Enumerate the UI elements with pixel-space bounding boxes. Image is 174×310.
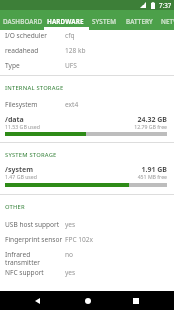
button[interactable]: HARDWARE bbox=[47, 10, 84, 30]
staticText: UFS bbox=[65, 61, 77, 70]
staticText: SYSTEM STORAGE bbox=[5, 151, 57, 159]
button[interactable]: DASHBOARD bbox=[3, 10, 43, 30]
staticText: Fingerprint sensor bbox=[5, 235, 63, 244]
staticText: FPC 102x bbox=[65, 235, 94, 244]
staticText: transmitter bbox=[5, 258, 40, 267]
button[interactable]: NETW bbox=[161, 10, 174, 30]
staticText: SYSTEM bbox=[92, 17, 117, 26]
staticText: 11.53 GB used bbox=[5, 123, 40, 130]
staticText: yes bbox=[65, 268, 76, 277]
staticText: 24.32 GB bbox=[137, 115, 167, 125]
staticText: Filesystem bbox=[5, 100, 38, 109]
staticText: 1.47 GB used bbox=[5, 173, 37, 180]
staticText: HARDWARE bbox=[47, 17, 84, 26]
staticText: BATTERY bbox=[126, 17, 153, 26]
staticText: yes bbox=[65, 220, 76, 229]
button[interactable]: Home bbox=[74, 291, 101, 310]
button[interactable]: BATTERY bbox=[126, 10, 153, 30]
button[interactable] bbox=[0, 58, 174, 73]
button[interactable]: Back bbox=[24, 291, 51, 310]
staticText: 128 kb bbox=[65, 46, 86, 55]
staticText: INTERNAL STORAGE bbox=[5, 84, 64, 92]
staticText: 7:37 bbox=[159, 1, 172, 9]
button[interactable]: SYSTEM bbox=[92, 10, 117, 30]
staticText: readahead bbox=[5, 46, 39, 55]
staticText: ext4 bbox=[65, 100, 79, 109]
button[interactable] bbox=[0, 43, 174, 58]
staticText: 1.91 GB bbox=[141, 165, 167, 175]
button[interactable] bbox=[0, 265, 174, 280]
staticText: cfq bbox=[65, 31, 75, 40]
staticText: Infrared bbox=[5, 250, 31, 259]
staticText: NETW bbox=[161, 17, 174, 26]
button[interactable] bbox=[0, 232, 174, 247]
button[interactable] bbox=[0, 28, 174, 43]
button[interactable] bbox=[0, 163, 174, 189]
staticText: I/O scheduler bbox=[5, 31, 47, 40]
button[interactable] bbox=[0, 217, 174, 232]
staticText: Type bbox=[5, 61, 20, 70]
staticText: 451 MB free bbox=[137, 173, 167, 180]
button[interactable] bbox=[0, 113, 174, 139]
button[interactable] bbox=[0, 247, 174, 269]
staticText: 12.79 GB free bbox=[134, 123, 167, 130]
staticText: /data bbox=[5, 115, 24, 125]
staticText: DASHBOARD bbox=[3, 17, 43, 26]
staticText: NFC support bbox=[5, 268, 44, 277]
button[interactable]: Recent apps bbox=[122, 291, 149, 310]
button[interactable] bbox=[0, 97, 174, 112]
staticText: no bbox=[65, 250, 74, 259]
staticText: OTHER bbox=[5, 203, 25, 211]
staticText: /system bbox=[5, 165, 33, 175]
staticText: USB host support bbox=[5, 220, 60, 229]
